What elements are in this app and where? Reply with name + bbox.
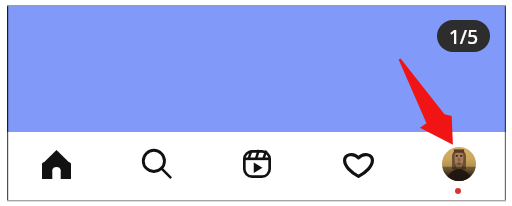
button[interactable]: Profile xyxy=(409,130,509,198)
button[interactable]: Home xyxy=(6,130,106,198)
staticText: 1/5 xyxy=(449,24,479,50)
button[interactable]: 1/5 xyxy=(437,20,490,52)
button[interactable]: Reels xyxy=(207,130,307,198)
button[interactable]: Search xyxy=(107,130,207,198)
button[interactable]: Activity xyxy=(308,130,408,198)
